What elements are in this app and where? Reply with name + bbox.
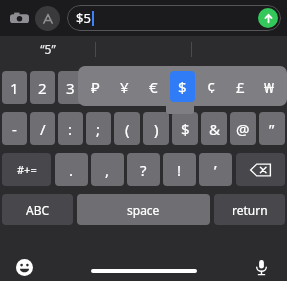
staticText: 7 — [181, 78, 190, 98]
button[interactable]: Camera — [6, 5, 33, 32]
button[interactable]: 8 — [201, 71, 227, 104]
staticText: @ — [236, 119, 250, 139]
button[interactable]: return — [214, 194, 285, 225]
button[interactable]: ’ — [199, 153, 232, 186]
button[interactable]: & — [201, 112, 227, 145]
button[interactable]: , — [91, 153, 124, 186]
staticText: ABC — [26, 202, 50, 218]
button[interactable]: $5 — [67, 5, 281, 31]
staticText: 9 — [239, 78, 248, 98]
button[interactable]: App Store — [35, 6, 60, 31]
button[interactable]: 2 — [30, 71, 55, 104]
staticText: : — [68, 119, 73, 139]
staticText: £ — [236, 77, 245, 97]
button[interactable]: $ — [170, 71, 195, 102]
staticText: 5 — [123, 78, 132, 98]
button[interactable]: space — [77, 194, 210, 225]
button[interactable]: 0 — [259, 71, 285, 104]
button[interactable]: ₽ — [83, 71, 108, 102]
button[interactable]: ” — [259, 112, 285, 145]
button[interactable]: 4 — [86, 71, 111, 104]
button[interactable]: “5” — [0, 36, 95, 62]
staticText: € — [149, 77, 158, 97]
staticText: 8 — [210, 78, 219, 98]
button[interactable]: 9 — [230, 71, 256, 104]
staticText: ? — [140, 160, 147, 180]
button[interactable]: Backspace — [236, 153, 285, 186]
staticText: ₩ — [264, 77, 275, 97]
staticText: 2 — [38, 78, 47, 98]
button[interactable]: £ — [228, 71, 253, 102]
button[interactable]: 1 — [2, 71, 27, 104]
button[interactable]: Dictation — [249, 255, 273, 279]
staticText: ¥ — [120, 77, 129, 97]
staticText: $5 — [76, 9, 91, 27]
staticText: & — [209, 119, 220, 139]
staticText: / — [40, 119, 46, 139]
staticText: 3 — [66, 78, 75, 98]
button[interactable]: ₩ — [257, 71, 282, 102]
button[interactable]: - — [2, 112, 27, 145]
staticText: #+= — [17, 162, 37, 177]
button[interactable]: 6 — [143, 71, 169, 104]
staticText: ; — [96, 119, 101, 139]
button[interactable]: ¥ — [112, 71, 137, 102]
button[interactable]: 7 — [172, 71, 198, 104]
staticText: ) — [154, 119, 159, 139]
staticText: $ — [181, 119, 190, 139]
button[interactable]: ( — [114, 112, 140, 145]
button[interactable]: / — [30, 112, 55, 145]
button[interactable]: @ — [230, 112, 256, 145]
staticText: “5” — [40, 41, 56, 57]
staticText: 0 — [268, 78, 277, 98]
staticText: - — [12, 119, 17, 139]
button[interactable]: #+= — [2, 153, 51, 186]
button[interactable]: ¢ — [199, 71, 224, 102]
button[interactable]: ; — [86, 112, 111, 145]
button[interactable]: . — [55, 153, 88, 186]
staticText: . — [69, 160, 74, 180]
button[interactable]: 5 — [114, 71, 140, 104]
staticText: 6 — [152, 78, 161, 98]
staticText: ’ — [214, 160, 217, 180]
staticText: ! — [177, 160, 182, 180]
button[interactable]: 3 — [58, 71, 83, 104]
staticText: return — [232, 202, 268, 218]
staticText: ₽ — [91, 77, 100, 97]
button[interactable]: : — [58, 112, 83, 145]
staticText: 1 — [10, 78, 19, 98]
staticText: ¢ — [207, 77, 216, 97]
button[interactable]: Emoji — [12, 255, 36, 279]
staticText: ( — [125, 119, 130, 139]
button[interactable]: ABC — [2, 194, 73, 225]
staticText: , — [105, 160, 110, 180]
button[interactable]: ) — [143, 112, 169, 145]
staticText: $ — [178, 77, 187, 97]
button[interactable]: ! — [163, 153, 196, 186]
button[interactable]: $ — [172, 112, 198, 145]
staticText: ” — [269, 119, 275, 139]
button[interactable]: ? — [127, 153, 160, 186]
button[interactable]: Send — [258, 8, 278, 28]
button[interactable]: € — [141, 71, 166, 102]
staticText: space — [127, 202, 160, 218]
staticText: 4 — [94, 78, 103, 98]
